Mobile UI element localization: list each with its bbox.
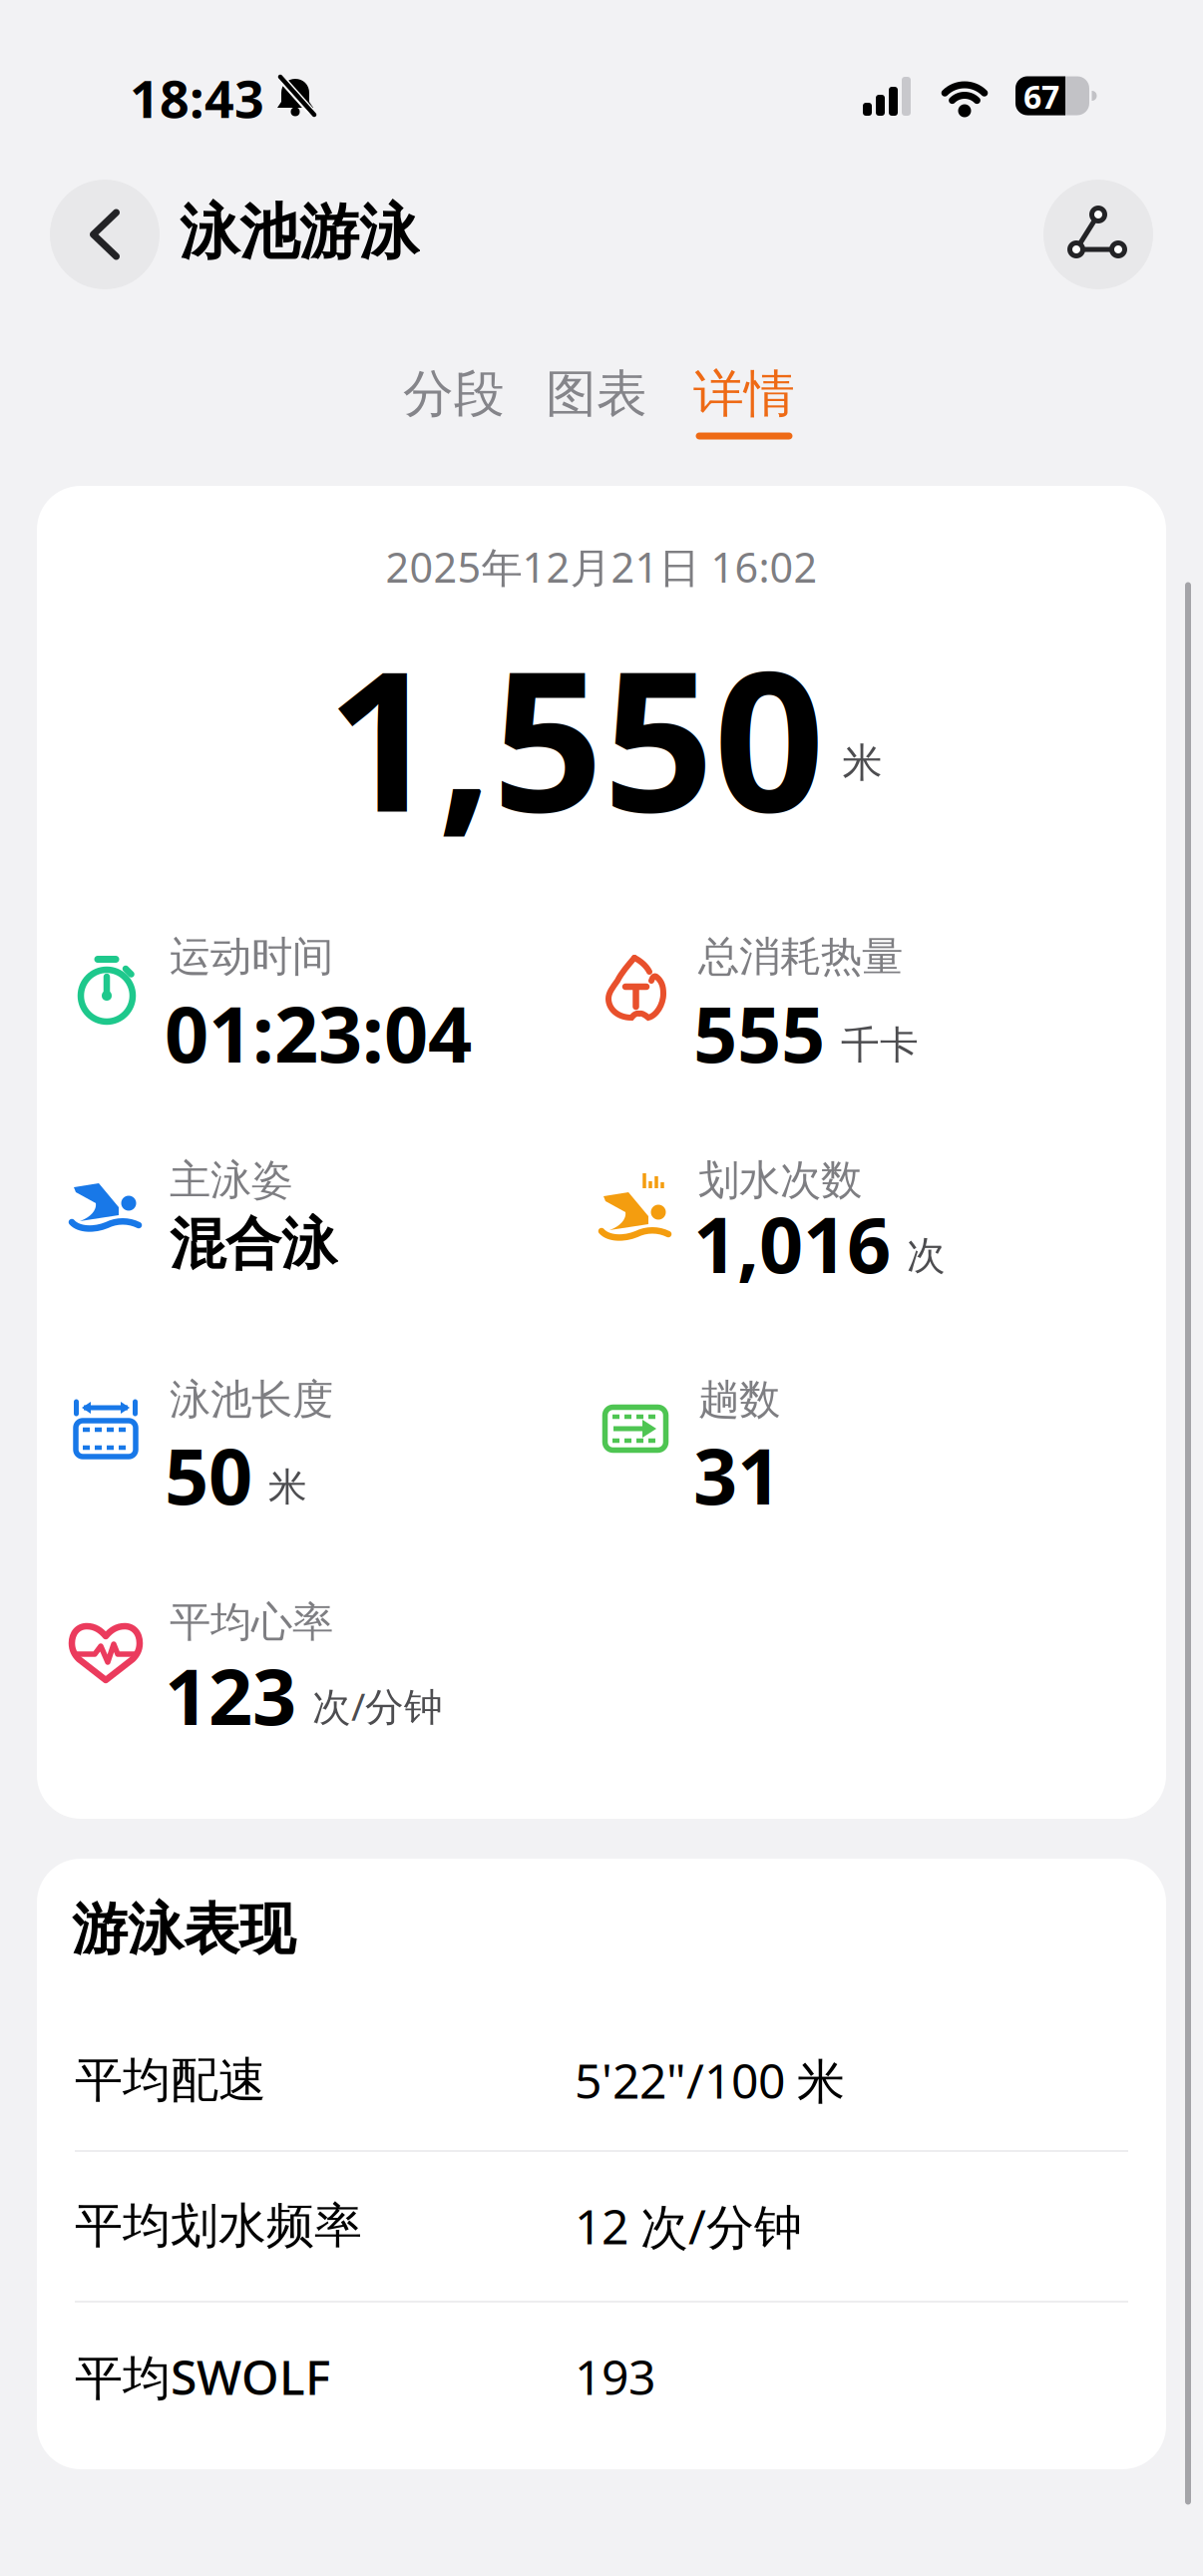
- staticText: 米: [268, 1463, 307, 1511]
- staticText: 12 次/分钟: [575, 2194, 802, 2258]
- staticText: 混合泳: [170, 1210, 337, 1278]
- staticText: 泳池长度: [170, 1374, 333, 1425]
- staticText: 总消耗热量: [698, 931, 903, 982]
- staticText: 运动时间: [170, 931, 333, 982]
- staticText: 详情: [693, 363, 795, 425]
- staticText: 555: [693, 981, 825, 1084]
- staticText: 平均划水频率: [75, 2196, 362, 2255]
- staticText: 123: [165, 1644, 296, 1746]
- staticText: 1,550: [327, 607, 824, 865]
- staticText: 图表: [546, 363, 647, 425]
- button[interactable]: 详情: [0, 0, 1203, 2576]
- staticText: 次: [907, 1232, 946, 1279]
- staticText: 平均心率: [170, 1597, 333, 1648]
- staticText: 千卡: [841, 1022, 919, 1069]
- staticText: 次/分钟: [312, 1680, 443, 1731]
- staticText: 主泳姿: [170, 1155, 292, 1206]
- staticText: 划水次数: [698, 1155, 862, 1206]
- button[interactable]: 图表: [0, 0, 1203, 2576]
- staticText: 分段: [403, 363, 505, 425]
- button[interactable]: Back: [50, 180, 160, 289]
- staticText: 50: [165, 1423, 252, 1526]
- staticText: 泳池游泳: [180, 196, 419, 269]
- staticText: 平均配速: [75, 2051, 266, 2110]
- staticText: 米: [842, 738, 882, 787]
- button[interactable]: 分段: [0, 0, 1203, 2576]
- staticText: 31: [693, 1423, 781, 1526]
- staticText: 193: [575, 2345, 655, 2408]
- staticText: 游泳表现: [72, 1895, 295, 1964]
- staticText: 01:23:04: [165, 981, 472, 1084]
- staticText: 1,016: [693, 1192, 891, 1294]
- staticText: 67: [1023, 75, 1059, 118]
- staticText: 平均SWOLF: [75, 2345, 330, 2408]
- staticText: 18:43: [130, 63, 264, 132]
- staticText: 2025年12月21日 16:02: [386, 539, 817, 594]
- staticText: 5'22"/100 米: [575, 2048, 845, 2112]
- staticText: 趟数: [698, 1374, 780, 1425]
- button[interactable]: Share: [1043, 180, 1153, 289]
